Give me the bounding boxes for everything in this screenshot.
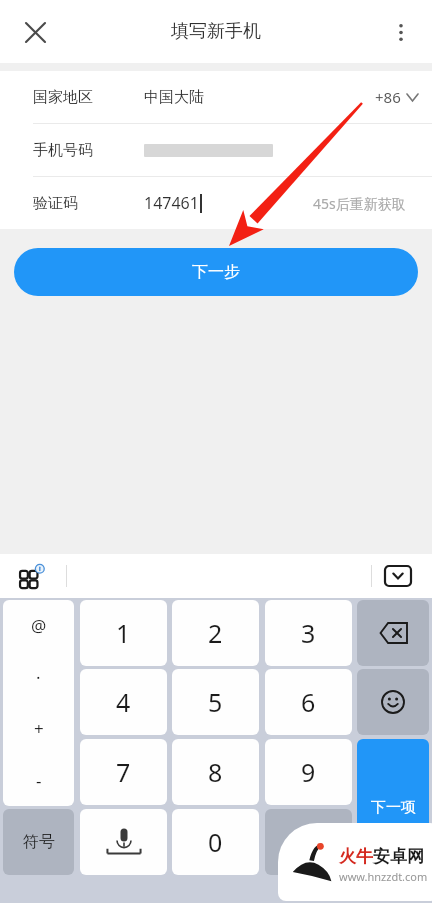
button[interactable]: 符号 [3, 809, 74, 875]
staticText: 填写新手机 [171, 20, 261, 43]
staticText: · [36, 666, 41, 689]
button[interactable]: 2 [172, 600, 259, 666]
button[interactable]: 1 [80, 600, 167, 666]
staticText: 8 [208, 755, 223, 789]
staticText: 下一项 [371, 798, 416, 817]
button[interactable]: Keyboard apps [14, 558, 50, 594]
button[interactable]: Delete [357, 600, 429, 666]
button[interactable]: Voice input and space [80, 809, 167, 875]
staticText: 2 [208, 616, 223, 650]
button[interactable]: 4 [80, 669, 167, 735]
button[interactable]: 5 [172, 669, 259, 735]
button[interactable]: @ [3, 600, 74, 806]
staticText: www.hnzzdt.com [339, 869, 428, 884]
button[interactable]: Emoji [357, 669, 429, 735]
staticText: 6 [301, 685, 316, 719]
button[interactable]: 8 [172, 739, 259, 805]
button[interactable]: 6 [265, 669, 352, 735]
staticText: 147461 [144, 192, 199, 214]
staticText: 符号 [23, 832, 55, 852]
staticText: 7 [116, 755, 131, 789]
button[interactable]: More options [382, 13, 420, 51]
staticText: - [36, 769, 42, 792]
staticText: @ [31, 614, 47, 637]
button[interactable]: 7 [80, 739, 167, 805]
button[interactable]: 3 [265, 600, 352, 666]
staticText: 5 [208, 685, 223, 719]
staticText: + [34, 717, 44, 740]
staticText: 0 [208, 825, 223, 859]
staticText: 中国大陆 [144, 88, 204, 107]
staticText: 1 [116, 616, 131, 650]
button[interactable]: 验证码 [0, 177, 432, 229]
button[interactable]: 下一步 [14, 248, 418, 296]
staticText: 4 [116, 685, 131, 719]
button[interactable]: Hide keyboard [378, 556, 418, 596]
button[interactable]: 返回 [265, 809, 352, 875]
button[interactable]: 手机号码 [0, 124, 432, 176]
staticText: 返回 [293, 832, 325, 852]
staticText: 验证码 [33, 194, 113, 213]
button[interactable]: 0 [172, 809, 259, 875]
button[interactable]: 国家地区 [0, 71, 432, 123]
staticText: 安卓网 [373, 846, 424, 867]
staticText: 火牛 [339, 846, 373, 867]
staticText: 下一步 [192, 262, 240, 282]
staticText: 国家地区 [33, 88, 113, 107]
button[interactable]: Close [16, 13, 54, 51]
staticText: 9 [301, 755, 316, 789]
staticText: 手机号码 [33, 141, 113, 160]
button[interactable]: 45s后重新获取 [313, 194, 406, 213]
button[interactable]: 9 [265, 739, 352, 805]
staticText: 3 [301, 616, 316, 650]
button[interactable]: 下一项 [357, 739, 429, 875]
staticText: +86 [375, 87, 401, 107]
